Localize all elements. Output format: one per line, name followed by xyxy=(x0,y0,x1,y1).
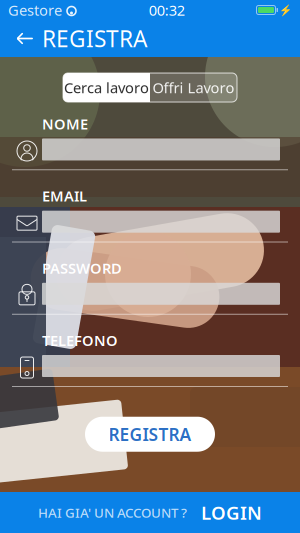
staticText: LOGIN xyxy=(201,500,262,525)
staticText: EMAIL xyxy=(42,186,87,206)
button[interactable]: REGISTRA xyxy=(85,417,215,452)
staticText: NOME xyxy=(42,114,88,133)
staticText: Offri Lavoro xyxy=(152,78,234,97)
staticText: HAI GIA' UN ACCOUNT ? xyxy=(38,504,187,521)
staticText: Gestore xyxy=(8,0,62,20)
staticText: REGISTRA xyxy=(108,423,191,446)
staticText: Cerca lavoro xyxy=(64,78,149,97)
staticText: ⚡ xyxy=(279,4,292,16)
button[interactable]: REGISTRA xyxy=(42,15,147,61)
staticText: 00:32 xyxy=(149,0,185,20)
staticText: PASSWORD xyxy=(42,258,122,278)
staticText: TELEFONO xyxy=(42,330,118,350)
staticText: REGISTRA xyxy=(42,23,147,53)
button[interactable]: Back xyxy=(8,20,42,57)
button[interactable]: LOGIN xyxy=(187,492,262,533)
button[interactable]: Offri Lavoro xyxy=(150,73,237,102)
button[interactable]: Cerca lavoro xyxy=(63,73,150,102)
